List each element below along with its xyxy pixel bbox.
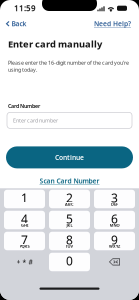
staticText: PQRS bbox=[19, 243, 29, 249]
staticText: JKL bbox=[66, 222, 72, 228]
staticText: GHI bbox=[21, 222, 28, 228]
staticText: 11:59 bbox=[14, 3, 36, 13]
button[interactable]: + * # bbox=[4, 253, 45, 271]
button[interactable]: 3 bbox=[94, 190, 135, 208]
staticText: 8 bbox=[66, 232, 73, 248]
button[interactable]: Back bbox=[0, 16, 33, 31]
staticText: Please enter the 16-digit number of the … bbox=[8, 59, 129, 73]
staticText: 7 bbox=[21, 232, 28, 248]
staticText: Continue bbox=[55, 153, 84, 162]
button[interactable]: 7 bbox=[4, 232, 45, 250]
staticText: Enter card manually bbox=[8, 38, 102, 50]
staticText: Enter card number bbox=[13, 117, 58, 124]
button[interactable]: 5 bbox=[49, 211, 90, 229]
staticText: 6 bbox=[111, 211, 118, 227]
staticText: 4 bbox=[21, 211, 28, 227]
button[interactable]: Delete bbox=[94, 253, 135, 271]
button[interactable]: 1 bbox=[4, 190, 45, 208]
staticText: DEF bbox=[111, 201, 118, 207]
staticText: Card Number bbox=[8, 102, 40, 109]
staticText: Need Help? bbox=[94, 19, 131, 28]
staticText bbox=[69, 264, 70, 270]
button[interactable]: 2 bbox=[49, 190, 90, 208]
button[interactable]: Need Help? bbox=[88, 16, 137, 31]
staticText: WXYZ bbox=[109, 243, 120, 249]
staticText: + * # bbox=[16, 258, 32, 266]
staticText: ABC bbox=[65, 201, 74, 207]
button[interactable]: Continue bbox=[6, 146, 133, 168]
button[interactable]: 4 bbox=[4, 211, 45, 229]
staticText: MNO bbox=[109, 222, 119, 228]
staticText: 2 bbox=[66, 190, 73, 206]
button[interactable]: 0 bbox=[49, 253, 90, 271]
button[interactable]: 8 bbox=[49, 232, 90, 250]
staticText: 5 bbox=[66, 211, 73, 227]
staticText: 1 bbox=[21, 190, 28, 206]
button[interactable]: 6 bbox=[94, 211, 135, 229]
staticText: Back bbox=[12, 19, 27, 28]
staticText: TUV bbox=[65, 243, 73, 249]
button[interactable]: 9 bbox=[94, 232, 135, 250]
staticText: 0 bbox=[66, 253, 73, 269]
staticText: 9 bbox=[111, 232, 118, 248]
staticText: Scan Card Number bbox=[39, 176, 99, 185]
button[interactable]: Scan Card Number bbox=[39, 173, 99, 188]
staticText: 3 bbox=[111, 190, 118, 206]
